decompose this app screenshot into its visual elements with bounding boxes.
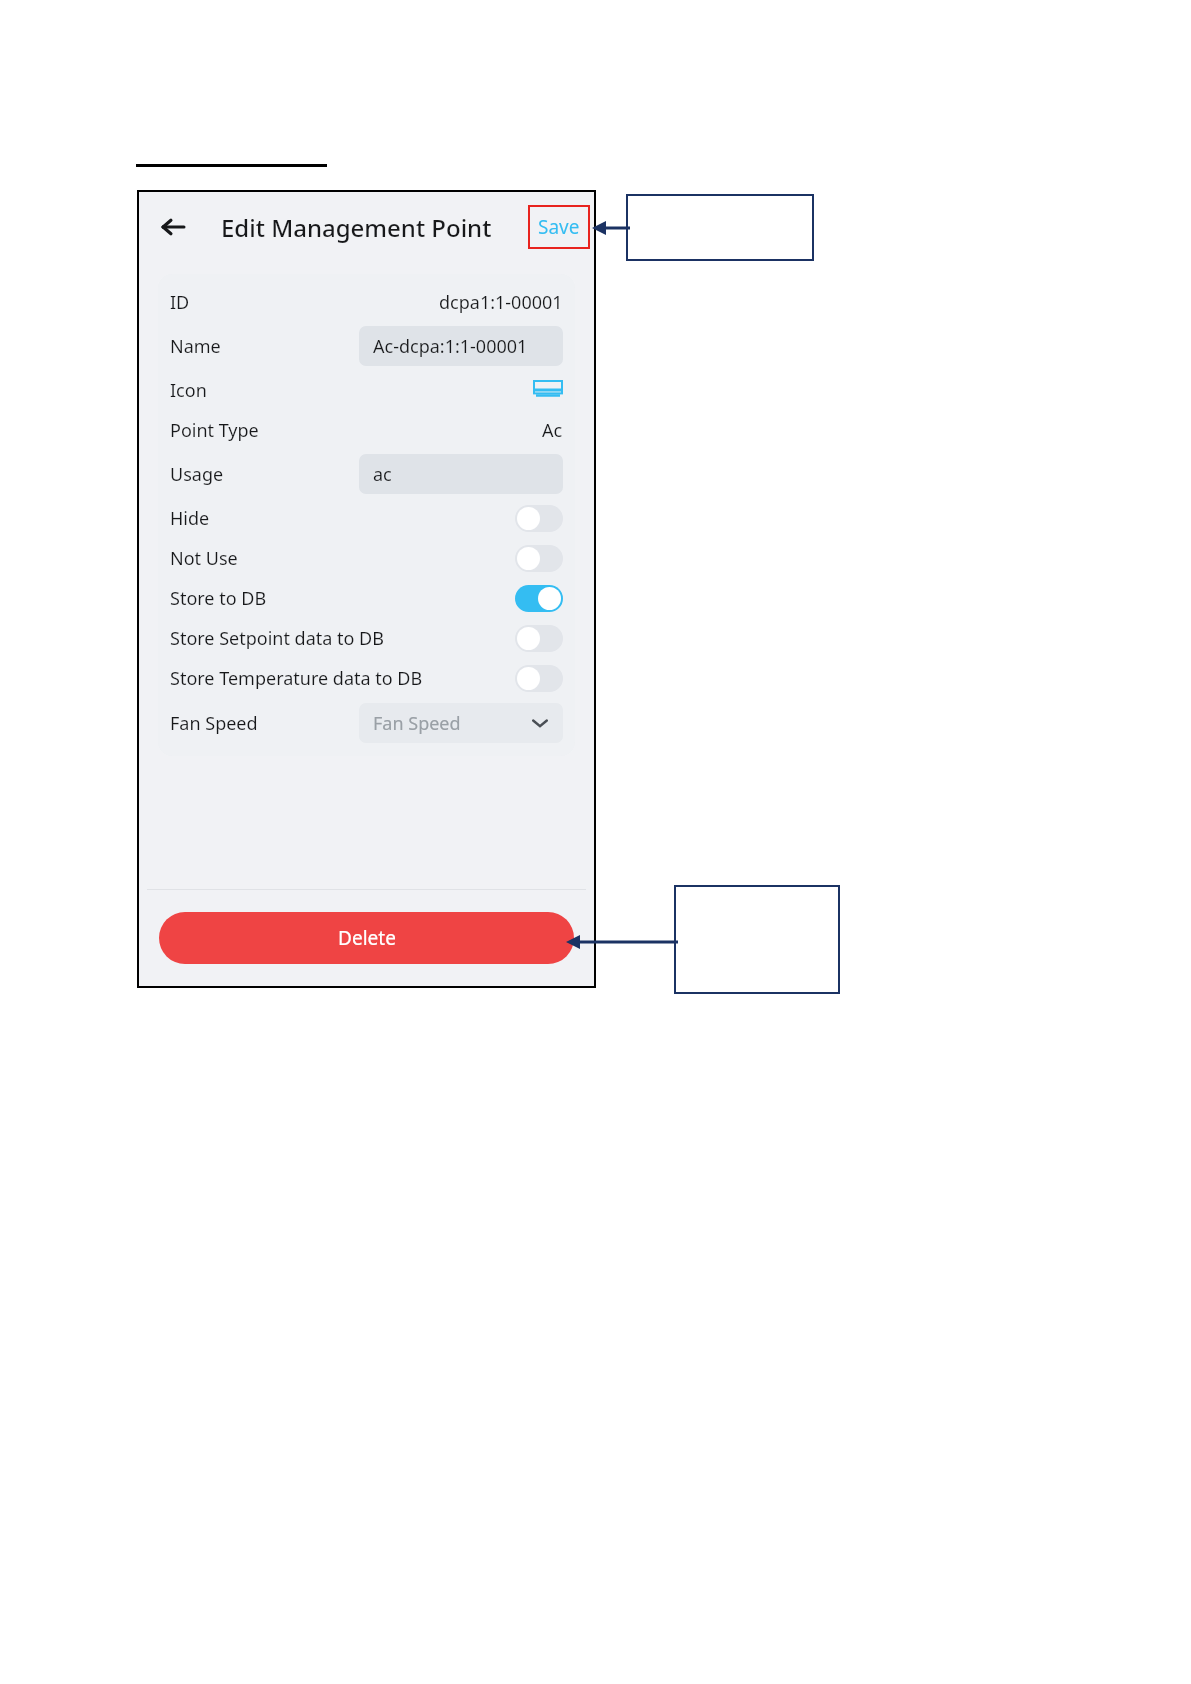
button[interactable]: ID [170,282,563,322]
staticText: ID [170,290,190,315]
staticText: Store to DB [170,586,267,611]
staticText: Delete [338,925,396,951]
staticText: Ac-dcpa:1:1-00001 [373,334,528,359]
button[interactable]: Fan Speed [359,703,563,743]
other: Air conditioner icon [533,380,563,400]
staticText: Fan Speed [373,711,461,736]
staticText: Save [538,214,580,240]
staticText: Not Use [170,546,238,571]
button[interactable]: Not Use [170,538,563,578]
button[interactable]: Icon [170,370,563,410]
button[interactable]: Hide [170,498,563,538]
button[interactable]: Store Temperature data to DB [170,658,563,698]
button[interactable]: Back [151,205,195,249]
staticText: Ac [542,418,563,443]
button[interactable]: Store to DB [170,578,563,618]
staticText: Icon [170,378,207,403]
staticText: Name [170,334,221,359]
staticText: Store Temperature data to DB [170,666,423,691]
staticText: Store Setpoint data to DB [170,626,384,651]
staticText: dcpa1:1-00001 [439,290,563,315]
staticText: Point Type [170,418,259,443]
button[interactable]: Store Setpoint data to DB [170,618,563,658]
button[interactable]: Ac-dcpa:1:1-00001 [359,326,563,366]
staticText: Usage [170,462,224,487]
staticText: Fan Speed [170,711,258,736]
staticText: Edit Management Point [221,211,492,244]
button[interactable]: ac [359,454,563,494]
button[interactable]: Save [528,205,590,249]
staticText: ac [373,462,392,487]
button[interactable]: Point Type [170,410,563,450]
staticText: Hide [170,506,210,531]
button[interactable]: Delete [159,912,574,964]
